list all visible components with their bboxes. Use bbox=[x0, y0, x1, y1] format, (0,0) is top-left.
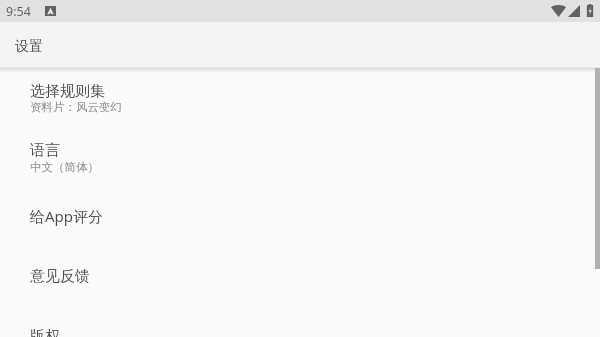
button[interactable]: 版权 bbox=[0, 306, 600, 337]
staticText: 给App评分 bbox=[30, 206, 104, 226]
other: Screenshot notification bbox=[45, 6, 56, 16]
other: Wi-Fi bbox=[551, 5, 566, 17]
staticText: 9:54 bbox=[6, 3, 31, 20]
staticText: 版权 bbox=[30, 327, 60, 337]
button[interactable]: 给App评分 bbox=[0, 187, 600, 247]
staticText: 意见反馈 bbox=[30, 267, 90, 286]
staticText: 语言 bbox=[30, 141, 60, 160]
other: Mobile signal bbox=[568, 5, 580, 17]
button[interactable]: 选择规则集 bbox=[0, 67, 600, 120]
button[interactable]: 意见反馈 bbox=[0, 246, 600, 306]
other: Battery charging bbox=[586, 4, 594, 17]
staticText: 中文（简体） bbox=[30, 160, 99, 174]
staticText: 选择规则集 bbox=[30, 82, 105, 101]
button[interactable]: 语言 bbox=[0, 120, 600, 187]
staticText: 资料片：风云变幻 bbox=[30, 100, 122, 114]
staticText: 设置 bbox=[15, 38, 43, 56]
